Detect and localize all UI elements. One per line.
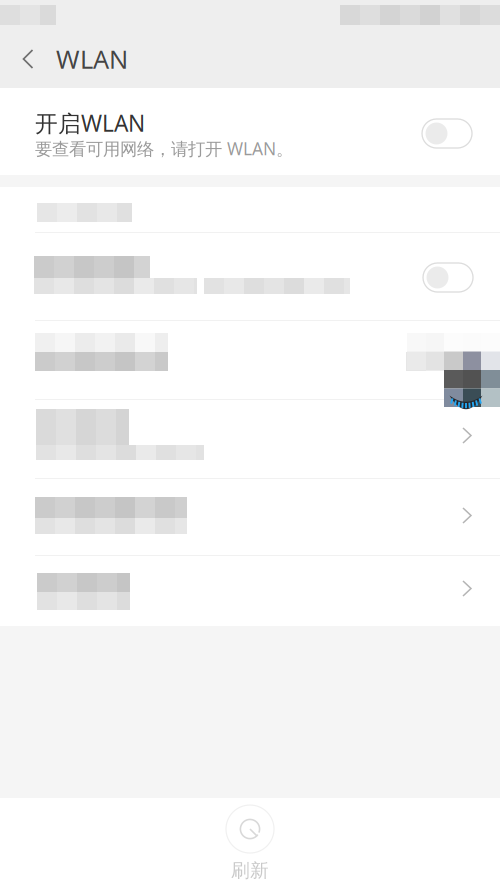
staticText: 开启WLAN: [35, 108, 145, 138]
button[interactable]: 刷新: [0, 798, 500, 889]
button[interactable]: Network option: [0, 233, 500, 320]
staticText: 刷新: [231, 859, 269, 882]
button[interactable]: Back: [0, 30, 56, 88]
button[interactable]: Network detail: [0, 400, 500, 478]
staticText: 要查看可用网络，请打开 WLAN。: [35, 137, 293, 160]
button[interactable]: Network detail: [0, 479, 500, 555]
staticText: WLAN: [56, 42, 128, 76]
button[interactable]: 开启WLAN: [422, 119, 472, 148]
button[interactable]: Network detail: [0, 556, 500, 626]
button[interactable]: Section: [0, 187, 500, 232]
button[interactable]: Network: [0, 321, 500, 399]
